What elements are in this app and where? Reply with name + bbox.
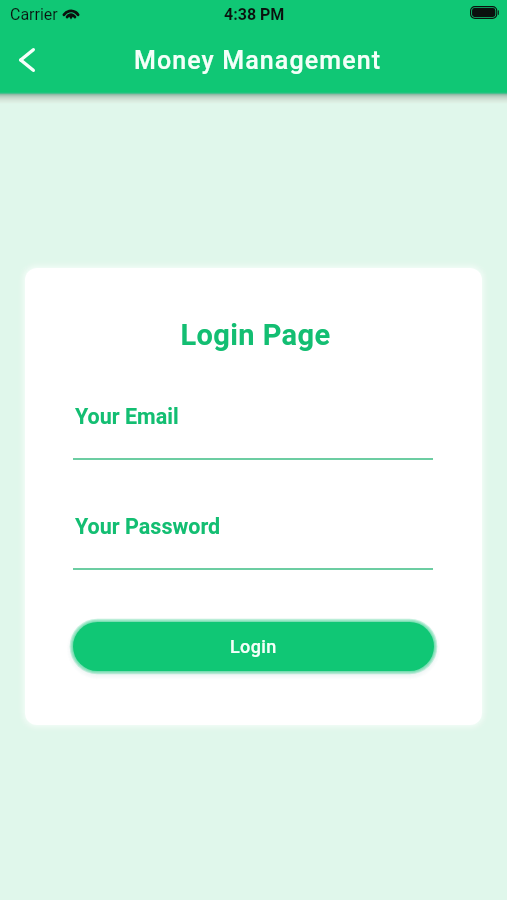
staticText: Money Management xyxy=(4,46,507,75)
staticText: Login xyxy=(230,636,277,657)
staticText: Your Email xyxy=(75,404,179,429)
button[interactable]: Login xyxy=(73,622,434,671)
button[interactable]: Back xyxy=(4,37,50,83)
button[interactable]: Your Password xyxy=(73,508,433,570)
staticText: 4:38 PM xyxy=(224,5,285,24)
staticText: Login Page xyxy=(27,318,482,352)
staticText: Your Password xyxy=(75,514,221,539)
button[interactable]: Your Email xyxy=(73,398,433,460)
staticText: Carrier xyxy=(10,5,58,24)
